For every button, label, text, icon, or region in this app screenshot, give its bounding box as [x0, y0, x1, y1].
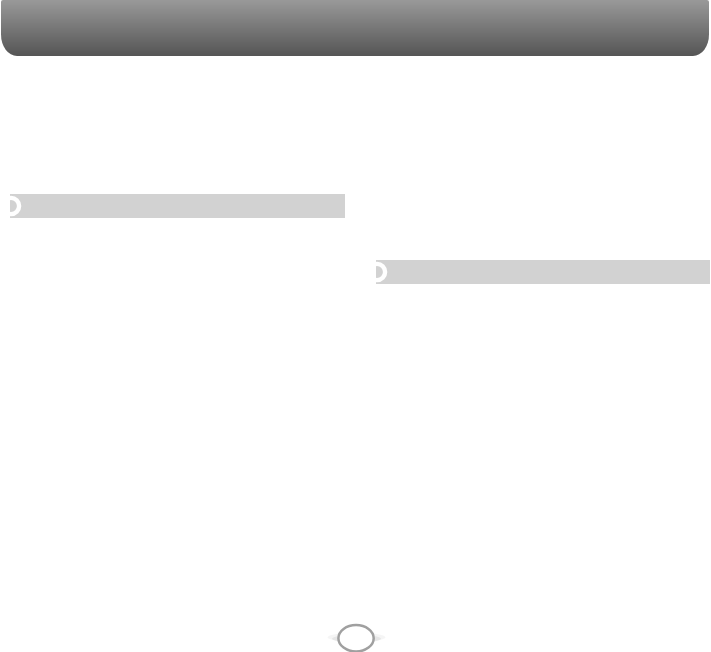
button[interactable]: App bar — [1, 0, 709, 56]
button[interactable]: Action — [326, 620, 387, 652]
button[interactable] — [10, 194, 345, 218]
button[interactable] — [376, 260, 710, 284]
